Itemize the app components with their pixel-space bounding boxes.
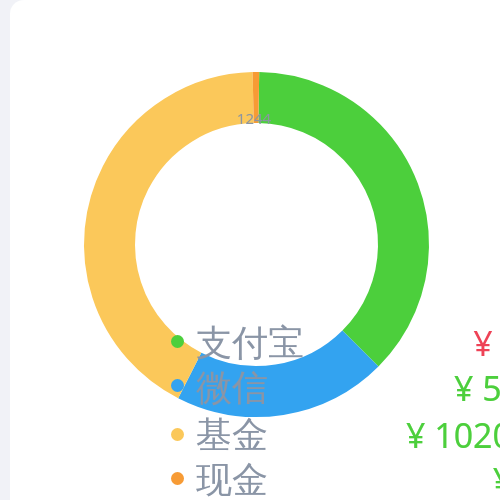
- staticText: 基金: [196, 412, 268, 456]
- button[interactable]: 微信: [165, 361, 500, 407]
- staticText: ¥ 10201.0: [300, 412, 500, 456]
- button[interactable]: 支付宝: [165, 316, 500, 362]
- button[interactable]: 现金: [165, 453, 500, 499]
- staticText: ¥ 879: [300, 320, 500, 364]
- staticText: ¥ 12: [300, 457, 500, 500]
- staticText: ¥ 5455: [300, 365, 500, 409]
- staticText: 微信: [196, 365, 268, 409]
- staticText: 1244: [230, 108, 278, 128]
- staticText: 支付宝: [196, 320, 304, 364]
- button[interactable]: 基金: [165, 408, 500, 454]
- staticText: 现金: [196, 457, 268, 500]
